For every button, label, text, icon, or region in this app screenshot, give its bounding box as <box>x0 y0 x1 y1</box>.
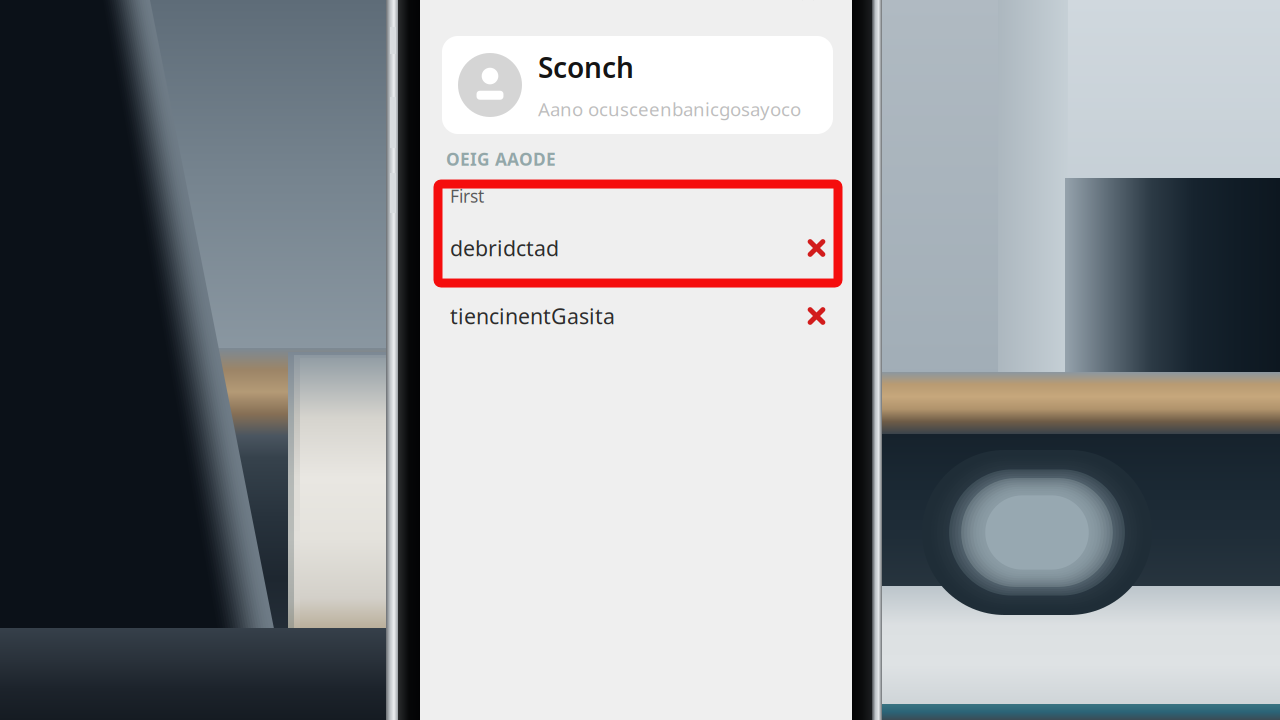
staticText: First <box>450 184 484 207</box>
staticText: debridctad <box>450 234 559 262</box>
staticText: Sconch <box>538 48 634 86</box>
staticText: Aano ocusceenbanicgosayoco <box>538 97 801 121</box>
staticText: tiencinentGasita <box>450 302 615 330</box>
button[interactable]: Sconch <box>442 36 833 134</box>
button[interactable]: debridctad <box>420 213 852 283</box>
staticText: OEIG AAODE <box>446 147 556 170</box>
button[interactable]: tiencinentGasita <box>420 283 852 349</box>
